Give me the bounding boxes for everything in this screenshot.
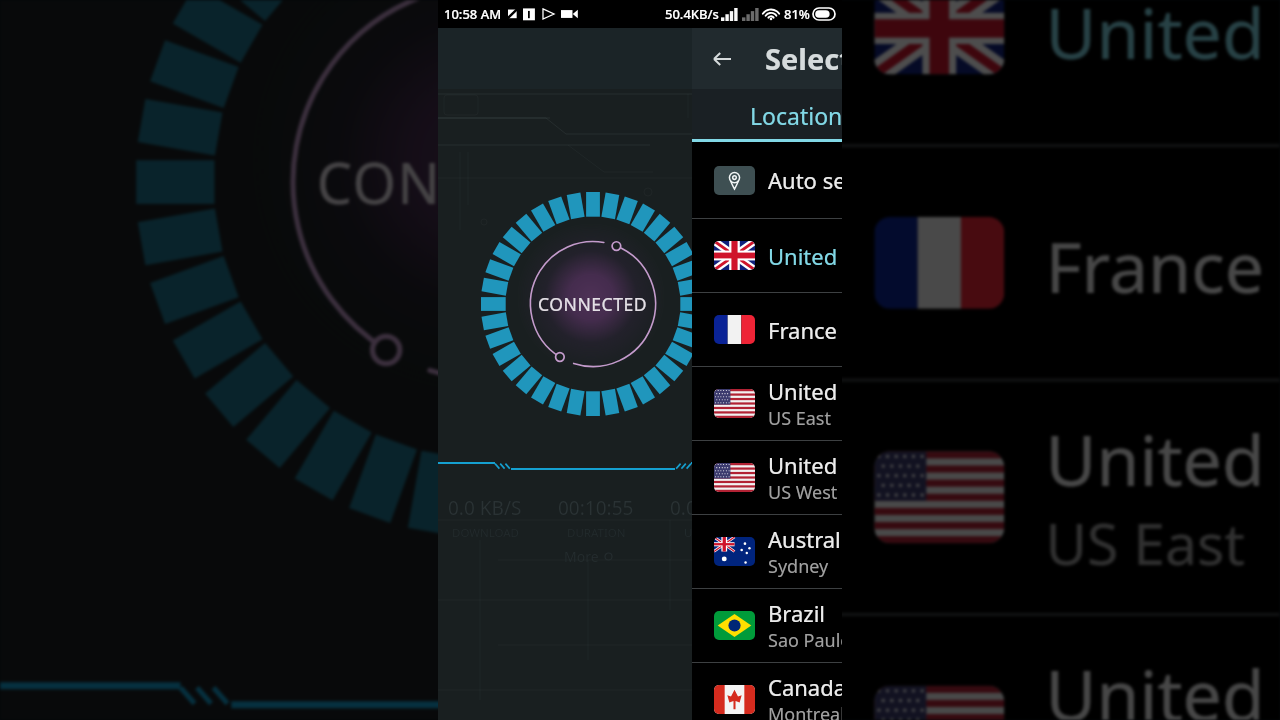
button[interactable]: United States — [692, 441, 842, 514]
staticText: Select Location — [765, 39, 842, 78]
staticText: United Kingdom — [768, 241, 842, 271]
button[interactable]: France — [805, 147, 1280, 378]
staticText: CONNECTED — [538, 292, 648, 316]
button[interactable]: United States — [805, 616, 1280, 720]
button[interactable]: Australia — [692, 515, 842, 588]
button[interactable]: Back — [705, 42, 739, 76]
staticText: 10:58 AM — [444, 5, 502, 23]
staticText: United Kingdom — [1045, 0, 1280, 77]
staticText: CONNECTED — [317, 144, 665, 220]
button[interactable]: Brazil — [692, 589, 842, 662]
staticText: United States — [1045, 645, 1280, 720]
staticText: Montreal — [768, 702, 842, 720]
staticText: United States — [1045, 410, 1280, 505]
button[interactable]: Canada — [692, 663, 842, 720]
staticText: US East — [1045, 505, 1245, 584]
staticText: Brazil — [768, 598, 825, 628]
staticText: 0.0 KB/S — [448, 495, 522, 521]
button[interactable]: United States — [805, 382, 1280, 613]
staticText: Sydney — [768, 554, 829, 579]
button[interactable]: France — [692, 293, 842, 366]
staticText: United States — [768, 376, 842, 406]
staticText: Australia — [768, 524, 842, 554]
button[interactable]: Location — [692, 89, 842, 142]
staticText: 0.0 KB/S — [670, 495, 744, 521]
staticText: DURATION — [567, 525, 626, 541]
staticText: United States — [768, 450, 842, 480]
staticText: France — [768, 315, 837, 345]
staticText: More — [564, 547, 599, 566]
staticText: Sao Paulo — [768, 628, 842, 653]
staticText: France — [1045, 217, 1264, 312]
button[interactable]: United Kingdom — [692, 219, 842, 292]
button[interactable]: Auto select — [692, 142, 842, 218]
staticText: Location — [750, 100, 842, 131]
staticText: US East — [768, 406, 831, 431]
staticText: UPLOAD — [684, 525, 730, 541]
button[interactable]: United Kingdom — [805, 0, 1280, 144]
staticText: US West — [768, 480, 838, 505]
staticText: Auto select — [768, 165, 842, 195]
staticText: 81% — [784, 5, 810, 23]
staticText: 00:10:55 — [558, 495, 634, 521]
button[interactable]: United States — [692, 367, 842, 440]
staticText: Canada — [768, 672, 842, 702]
staticText: 50.4KB/s — [665, 5, 719, 23]
